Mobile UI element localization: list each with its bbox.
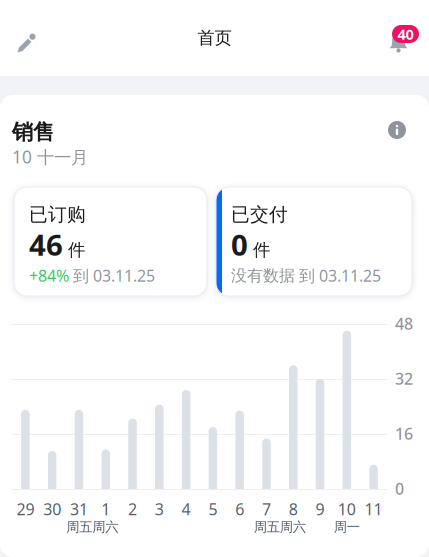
staticText: 件 [253,239,270,261]
staticText: 已交付 [231,203,288,226]
staticText: 48 [395,313,413,334]
button[interactable]: 已订购 [14,187,207,296]
staticText: 11 [365,498,383,520]
staticText: 9 [315,498,324,520]
staticText: 2 [128,498,137,520]
staticText: 销售 [12,119,54,145]
staticText: 31 [70,498,88,520]
staticText: 8 [289,498,298,520]
staticText: 周一 [334,519,360,535]
staticText: 到 03.11.25 [299,265,381,286]
staticText: 32 [395,368,413,389]
staticText: 16 [395,423,413,444]
staticText: 0 [231,225,248,264]
staticText: 0 [395,478,404,499]
staticText: 件 [68,239,85,261]
button[interactable]: Edit [4,20,48,64]
staticText: 7 [262,498,271,520]
staticText: 6 [235,498,244,520]
staticText: 46 [29,225,63,264]
staticText: 已订购 [29,203,86,226]
staticText: +84% [29,265,69,286]
staticText: 3 [155,498,164,520]
button[interactable]: 已交付 [216,187,412,296]
staticText: 1 [101,498,110,520]
staticText: 40 [397,24,413,44]
staticText: 周五周六 [254,519,306,535]
staticText: 10 [338,498,356,520]
staticText: 首页 [197,27,231,49]
staticText: 到 03.11.25 [73,265,155,286]
staticText: 周五周六 [66,519,118,535]
staticText: 没有数据 [231,266,295,285]
button[interactable]: More information [380,113,414,147]
button[interactable]: Notifications [379,20,427,64]
staticText: 10 十一月 [12,145,88,168]
staticText: 29 [16,498,34,520]
staticText: 30 [43,498,61,520]
staticText: 4 [182,498,191,520]
staticText: 5 [208,498,217,520]
